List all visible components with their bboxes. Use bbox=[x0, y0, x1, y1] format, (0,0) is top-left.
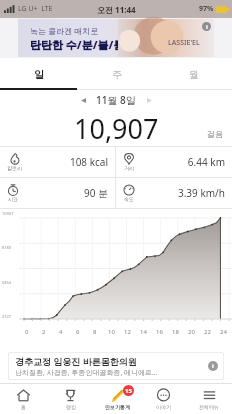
staticText: 걸음 bbox=[207, 129, 223, 139]
button[interactable]: 거리 bbox=[116, 147, 232, 177]
button[interactable]: 이야기 bbox=[140, 384, 186, 414]
staticText: 11월 8일 bbox=[96, 93, 136, 107]
staticText: 난치질환, 사경증, 후종인대골화증, 메니에르… bbox=[15, 368, 158, 378]
staticText: 5454 bbox=[2, 280, 12, 285]
staticText: 일 bbox=[34, 68, 44, 81]
staticText: 6 bbox=[76, 328, 80, 336]
staticText: 탄탄한 수/분/볼/륨 bbox=[30, 37, 125, 52]
button[interactable]: 월 bbox=[155, 58, 232, 90]
button[interactable]: 15 bbox=[94, 384, 140, 414]
staticText: 97% bbox=[199, 4, 214, 14]
staticText: i bbox=[212, 362, 214, 370]
staticText: 녹는 콜라겐 매치로 bbox=[30, 25, 99, 36]
button[interactable]: 랭킹 bbox=[47, 384, 94, 414]
staticText: 만보기통계 bbox=[105, 404, 130, 410]
staticText: 90 분 bbox=[19, 186, 108, 200]
button[interactable]: 홈 bbox=[0, 384, 47, 414]
staticText: 6.44 km bbox=[135, 155, 225, 169]
button[interactable]: 전체메뉴 bbox=[186, 384, 232, 414]
staticText: 4 bbox=[59, 328, 63, 336]
staticText: 시간 bbox=[8, 196, 18, 202]
button[interactable]: 광고 정보 bbox=[208, 361, 218, 371]
button[interactable]: 시간 bbox=[0, 178, 115, 208]
button[interactable]: 광고 정보 bbox=[202, 22, 211, 31]
staticText: 0 bbox=[25, 328, 29, 336]
staticText: 주 bbox=[112, 68, 122, 81]
staticText: 랭킹 bbox=[66, 404, 76, 410]
staticText: 8 bbox=[93, 328, 97, 336]
staticText: 월 bbox=[189, 68, 199, 81]
staticText: 경추교정 임웅진 바른몸한의원 bbox=[15, 355, 137, 367]
staticText: 10,907 bbox=[74, 110, 159, 146]
staticText: 18 bbox=[172, 328, 179, 336]
button[interactable]: 일 bbox=[0, 58, 78, 90]
staticText: LASSIE'EL bbox=[168, 38, 200, 48]
staticText: 22 bbox=[204, 328, 211, 336]
staticText: 거리 bbox=[124, 165, 134, 171]
staticText: 3.39 km/h bbox=[135, 186, 225, 200]
staticText: i bbox=[206, 23, 208, 31]
staticText: 15 bbox=[125, 387, 132, 395]
staticText: 칼로리 bbox=[7, 165, 22, 171]
button[interactable]: 속도 bbox=[116, 178, 232, 208]
staticText: 8180 bbox=[2, 245, 12, 250]
staticText: 전체메뉴 bbox=[199, 404, 219, 410]
staticText: 24 bbox=[220, 328, 227, 336]
staticText: 오전 11:44 bbox=[97, 4, 136, 15]
staticText: 10 bbox=[108, 328, 115, 336]
button[interactable]: 경추교정 임웅진 바른몸한의원 bbox=[8, 352, 224, 380]
staticText: 108 kcal bbox=[22, 155, 108, 169]
staticText: 홈 bbox=[21, 404, 26, 410]
button[interactable]: 다음 날짜 bbox=[142, 93, 156, 107]
staticText: 2 bbox=[42, 328, 46, 336]
staticText: 14 bbox=[140, 328, 147, 336]
button[interactable]: 이전 날짜 bbox=[76, 93, 90, 107]
button[interactable]: 광고 배너 bbox=[0, 18, 232, 58]
staticText: 이야기 bbox=[156, 404, 171, 410]
staticText: 2727 bbox=[2, 314, 12, 319]
button[interactable]: 주 bbox=[78, 58, 155, 90]
staticText: 20 bbox=[188, 328, 195, 336]
staticText: 12 bbox=[124, 328, 131, 336]
staticText: 16 bbox=[156, 328, 163, 336]
button[interactable]: 칼로리 bbox=[0, 147, 115, 177]
staticText: LG U+ LTE bbox=[18, 4, 53, 14]
staticText: 속도 bbox=[124, 196, 134, 202]
staticText: 10907 bbox=[2, 211, 14, 216]
